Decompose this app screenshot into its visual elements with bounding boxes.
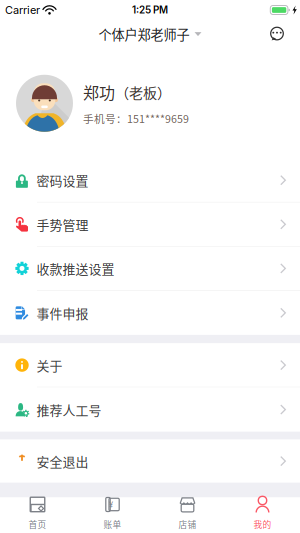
button[interactable]: 推荐人工号	[0, 387, 300, 432]
button[interactable]: ¥	[75, 497, 150, 533]
button[interactable]: 手势管理	[0, 203, 300, 247]
staticText: 郑功	[83, 80, 115, 104]
staticText: 关于	[36, 356, 62, 374]
staticText: ¥	[109, 500, 113, 509]
staticText: 个体户郑老师子	[98, 24, 189, 43]
staticText: 安全退出	[36, 452, 88, 470]
staticText: 事件申报	[36, 303, 88, 322]
staticText: 店铺	[178, 518, 196, 530]
staticText: （老板）	[115, 82, 171, 102]
staticText: Carrier	[5, 3, 40, 17]
staticText: 1:25 PM	[132, 4, 168, 16]
button[interactable]: 收款推送设置	[0, 247, 300, 291]
button[interactable]: 关于	[0, 343, 300, 387]
staticText: 账单	[103, 518, 121, 530]
button[interactable]: Messages	[260, 20, 294, 48]
staticText: 收款推送设置	[36, 259, 114, 278]
button[interactable]: 事件申报	[0, 291, 300, 335]
staticText: 手势管理	[36, 215, 88, 234]
button[interactable]: 我的	[225, 497, 300, 533]
staticText: 密码设置	[36, 171, 88, 189]
staticText: 我的	[253, 518, 271, 530]
button[interactable]: 安全退出	[0, 440, 300, 483]
staticText: 推荐人工号	[36, 400, 101, 419]
button[interactable]: 密码设置	[0, 158, 300, 203]
staticText: 手机号：151****9659	[83, 111, 189, 126]
button[interactable]: 首页	[0, 497, 75, 533]
button[interactable]: 店铺	[150, 497, 225, 533]
staticText: 首页	[28, 518, 46, 530]
